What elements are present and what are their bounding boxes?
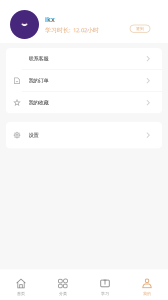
button[interactable]: 首页 — [0, 278, 42, 296]
button[interactable]: 我的 — [126, 278, 168, 296]
button[interactable]: 我的订单 — [6, 70, 162, 91]
button[interactable]: 分类 — [42, 278, 84, 296]
staticText: 联系客服 — [28, 55, 48, 62]
staticText: ikx — [45, 14, 55, 24]
staticText: 我的收藏 — [28, 99, 48, 106]
staticText: 分类 — [59, 291, 67, 296]
button[interactable]: 联系客服 — [6, 48, 162, 69]
staticText: 学习 — [101, 291, 109, 296]
staticText: 设置 — [28, 132, 38, 138]
staticText: 我的订单 — [28, 77, 48, 84]
staticText: 学习时长: 12.02小时 — [45, 26, 99, 34]
button[interactable]: 签到 — [130, 25, 150, 32]
staticText: 首页 — [17, 291, 25, 296]
staticText: 我的 — [143, 291, 151, 296]
button[interactable]: 我的收藏 — [6, 92, 162, 113]
staticText: 签到 — [136, 26, 144, 31]
button[interactable]: 学习 — [84, 278, 126, 296]
button[interactable]: 设置 — [6, 122, 162, 148]
